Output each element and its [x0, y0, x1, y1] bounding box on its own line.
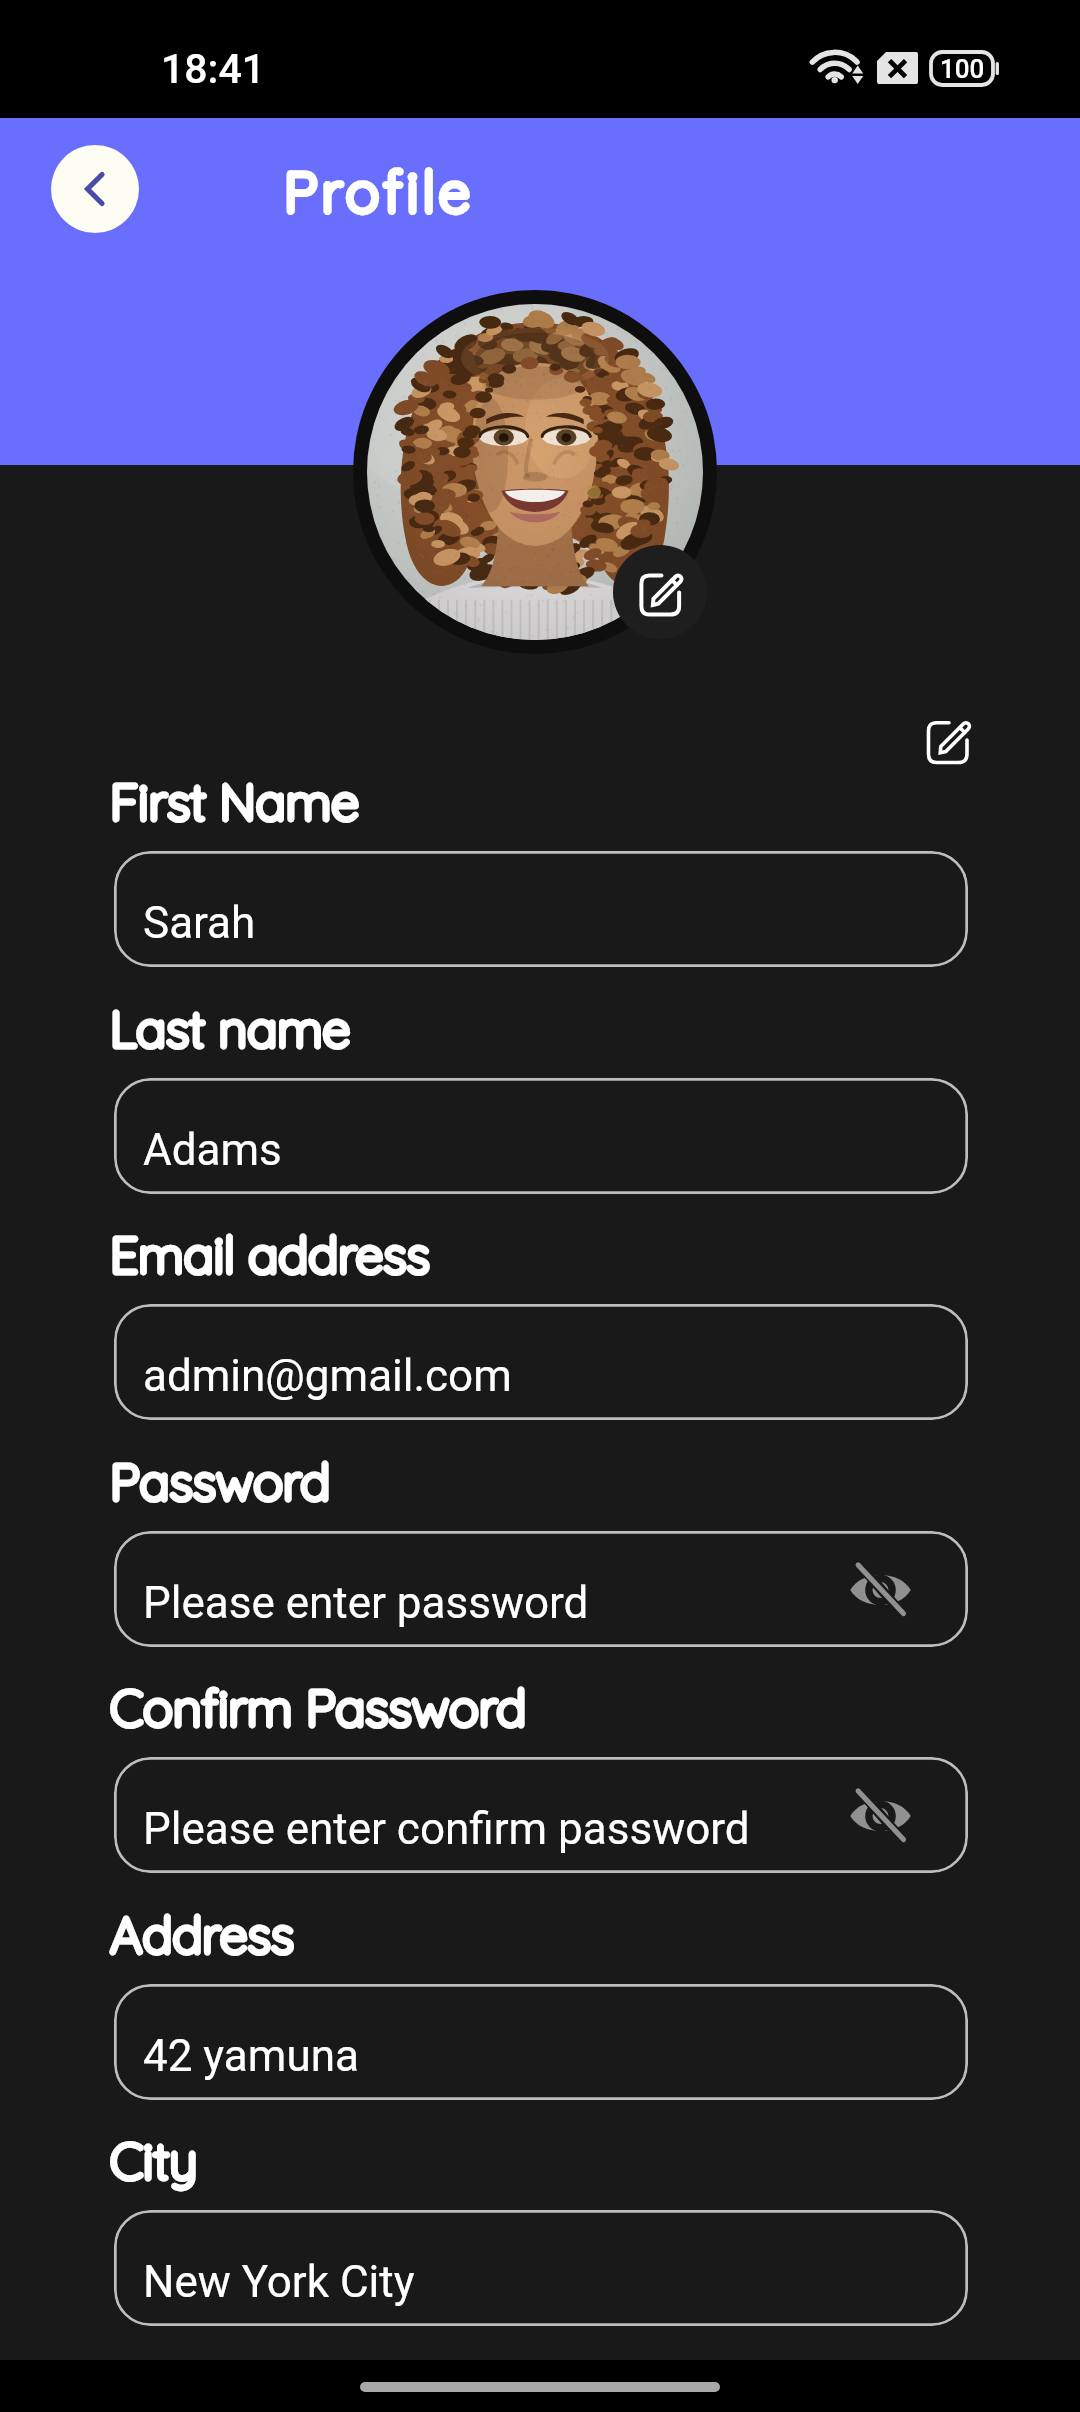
- button[interactable]: admin@gmail.com: [114, 1304, 968, 1420]
- staticText: Confirm Password: [110, 1676, 527, 1739]
- staticText: New York City: [143, 2256, 415, 2308]
- staticText: First Name: [110, 770, 360, 833]
- staticText: First Name: [110, 770, 360, 833]
- button[interactable]: Edit profile: [906, 698, 990, 782]
- staticText: City: [110, 2129, 198, 2192]
- staticText: City: [110, 2129, 198, 2192]
- button[interactable]: Show password: [834, 1543, 926, 1635]
- staticText: Confirm Password: [110, 1676, 527, 1739]
- button[interactable]: 42 yamuna: [114, 1984, 968, 2100]
- staticText: 18:41: [161, 45, 266, 93]
- staticText: Profile: [284, 156, 475, 226]
- staticText: Sarah: [143, 897, 256, 949]
- staticText: Last name: [110, 997, 351, 1060]
- staticText: Password: [110, 1450, 331, 1513]
- staticText: Email address: [110, 1223, 430, 1286]
- staticText: Address: [110, 1903, 294, 1966]
- button[interactable]: Please enter password: [114, 1531, 968, 1647]
- button[interactable]: Please enter confirm password: [114, 1757, 968, 1873]
- staticText: Please enter password: [143, 1577, 589, 1629]
- staticText: Please enter confirm password: [143, 1803, 750, 1855]
- button[interactable]: New York City: [114, 2210, 968, 2326]
- staticText: Profile: [284, 156, 475, 226]
- staticText: Address: [110, 1903, 294, 1966]
- button[interactable]: Adams: [114, 1078, 968, 1194]
- staticText: 100: [940, 54, 985, 84]
- staticText: 42 yamuna: [143, 2030, 359, 2082]
- staticText: admin@gmail.com: [143, 1350, 512, 1402]
- staticText: Last name: [110, 997, 351, 1060]
- button[interactable]: Back: [51, 145, 139, 233]
- staticText: Password: [110, 1450, 331, 1513]
- button[interactable]: Show password: [834, 1769, 926, 1861]
- button[interactable]: Change profile photo: [613, 545, 707, 639]
- staticText: Adams: [143, 1124, 282, 1176]
- staticText: Email address: [110, 1223, 430, 1286]
- button[interactable]: Sarah: [114, 851, 968, 967]
